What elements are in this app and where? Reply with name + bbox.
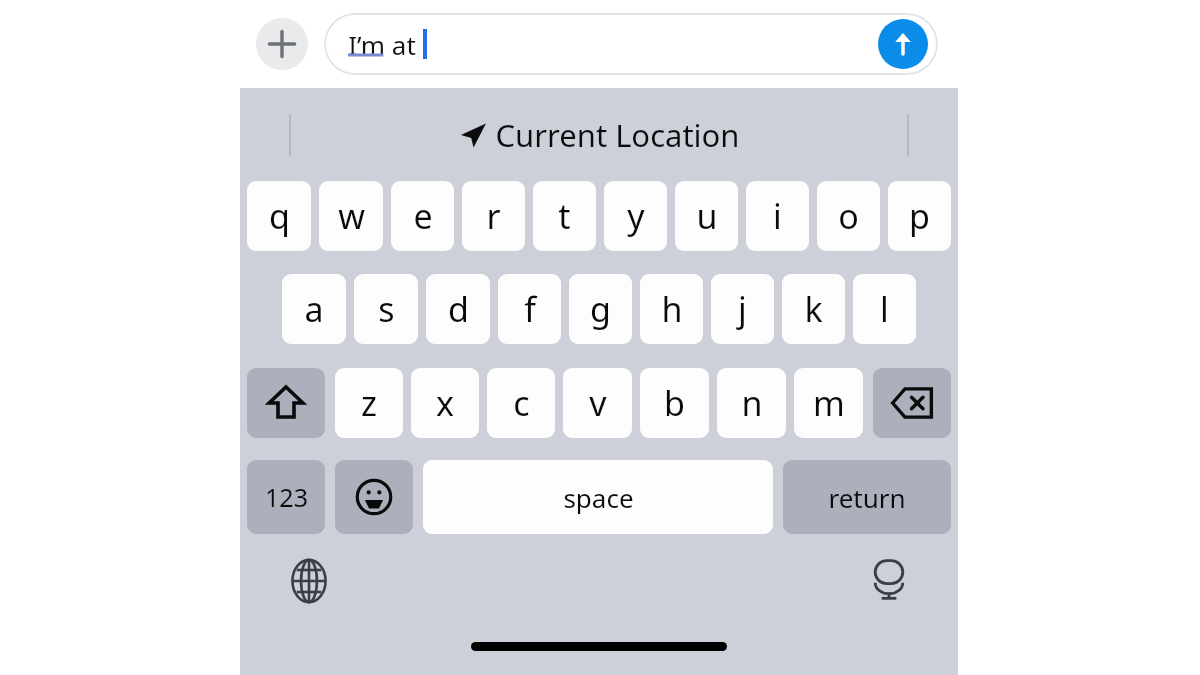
staticText: b <box>664 380 685 426</box>
button[interactable]: q <box>247 181 311 251</box>
button[interactable]: Current Location <box>458 114 740 156</box>
button[interactable]: o <box>817 181 880 251</box>
button[interactable]: x <box>411 368 479 438</box>
staticText: d <box>448 286 469 332</box>
staticText: e <box>413 193 433 239</box>
button[interactable]: Backspace <box>873 368 951 438</box>
staticText: space <box>563 480 634 515</box>
button[interactable]: Emoji <box>335 460 413 534</box>
button[interactable]: n <box>717 368 786 438</box>
staticText: y <box>627 193 645 239</box>
button[interactable]: v <box>563 368 632 438</box>
button[interactable]: c <box>487 368 555 438</box>
button[interactable]: return <box>783 460 951 534</box>
staticText: z <box>361 380 377 426</box>
button[interactable]: u <box>675 181 738 251</box>
staticText: m <box>813 380 845 426</box>
staticText: l <box>880 286 889 332</box>
button[interactable]: I’m at <box>324 13 938 75</box>
staticText: k <box>804 286 823 332</box>
button[interactable]: r <box>462 181 525 251</box>
staticText: Current Location <box>495 114 740 156</box>
button[interactable]: m <box>794 368 863 438</box>
button[interactable]: e <box>391 181 454 251</box>
button[interactable]: p <box>888 181 951 251</box>
staticText: g <box>590 286 611 332</box>
button[interactable]: b <box>640 368 709 438</box>
button[interactable]: t <box>533 181 596 251</box>
button[interactable]: d <box>426 274 490 344</box>
button[interactable]: Change keyboard <box>282 554 336 608</box>
button[interactable]: w <box>319 181 383 251</box>
button[interactable]: Send <box>878 19 928 69</box>
staticText: j <box>738 286 747 332</box>
staticText: w <box>338 193 365 239</box>
staticText: t <box>558 193 571 239</box>
staticText: v <box>589 380 607 426</box>
button[interactable]: k <box>782 274 845 344</box>
staticText: a <box>304 286 324 332</box>
button[interactable]: Add attachment <box>256 18 308 70</box>
staticText: h <box>661 286 683 332</box>
staticText: r <box>486 193 501 239</box>
button[interactable]: 123 <box>247 460 325 534</box>
button[interactable]: h <box>640 274 703 344</box>
staticText: 123 <box>265 480 308 514</box>
button[interactable]: s <box>354 274 418 344</box>
staticText: I’m at <box>348 27 416 62</box>
button[interactable]: f <box>498 274 561 344</box>
staticText: x <box>436 380 454 426</box>
staticText: c <box>513 380 530 426</box>
button[interactable]: g <box>569 274 632 344</box>
button[interactable]: Dictation <box>862 552 916 606</box>
staticText: s <box>378 286 395 332</box>
button[interactable]: z <box>335 368 403 438</box>
staticText: u <box>696 193 718 239</box>
staticText: n <box>741 380 763 426</box>
staticText: p <box>909 193 930 239</box>
button[interactable]: l <box>853 274 916 344</box>
button[interactable]: a <box>282 274 346 344</box>
staticText: q <box>269 193 290 239</box>
button[interactable]: Shift <box>247 368 325 438</box>
button[interactable]: y <box>604 181 667 251</box>
staticText: o <box>838 193 859 239</box>
button[interactable]: j <box>711 274 774 344</box>
staticText: i <box>773 193 782 239</box>
button[interactable]: i <box>746 181 809 251</box>
staticText: f <box>524 286 536 332</box>
button[interactable]: space <box>423 460 773 534</box>
staticText: return <box>828 480 906 515</box>
